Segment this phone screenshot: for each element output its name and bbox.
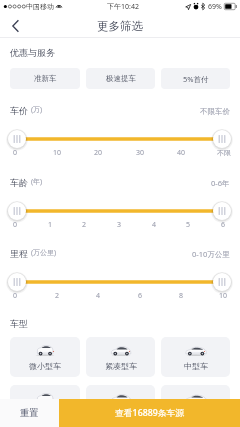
staticText: 重置 [20,407,39,419]
button[interactable]: 准新车 [10,68,80,89]
button[interactable]: 微小型车 [10,337,80,377]
button[interactable]: 极速提车 [86,68,155,89]
staticText: 0 [13,291,18,301]
staticText: 车龄 [10,177,28,188]
staticText: 30 [136,148,145,158]
staticText: (年) [31,177,43,187]
button[interactable]: 查看16889条车源 [59,399,240,427]
staticText: 6 [138,291,143,301]
staticText: 中型车 [184,361,208,371]
button[interactable]: 重置 [0,399,59,427]
staticText: 中大型车 [29,409,61,419]
button[interactable]: 返回 [0,13,30,38]
staticText: 4 [96,291,101,301]
button[interactable]: MPV [161,385,230,425]
staticText: 20 [94,148,103,158]
staticText: 0-6年 [211,178,230,188]
button[interactable]: 中型车 [161,337,230,377]
button[interactable]: SUV [86,385,155,425]
staticText: 5 [186,220,191,230]
staticText: 6 [221,220,226,230]
staticText: 极速提车 [106,74,136,83]
staticText: 不限车价 [200,107,230,116]
staticText: 紧凑型车 [105,361,137,371]
staticText: 0 [13,220,18,230]
staticText: 微小型车 [29,361,61,371]
staticText: 1 [48,220,53,230]
staticText: (万公里) [31,248,57,258]
staticText: 0 [13,148,18,158]
staticText: 下午10:42 [107,2,139,12]
staticText: 中国移动 [26,2,54,11]
staticText: 10 [53,148,62,158]
staticText: 4 [152,220,157,230]
button[interactable]: 紧凑型车 [86,337,155,377]
staticText: 不限 [217,148,231,157]
staticText: 优惠与服务 [10,47,55,58]
staticText: 0-10万公里 [192,249,230,259]
staticText: 里程 [10,248,28,259]
staticText: 2 [82,220,87,230]
staticText: 更多筛选 [97,19,143,33]
staticText: 车价 [10,105,28,116]
staticText: (万) [31,105,43,115]
staticText: SUV [113,409,129,420]
staticText: 5%首付 [183,74,209,84]
staticText: 8 [179,291,184,301]
staticText: 10 [219,291,228,301]
button[interactable]: 中大型车 [10,385,80,425]
staticText: 2 [55,291,60,301]
staticText: 查看16889条车源 [115,407,185,419]
staticText: 40 [177,148,186,158]
button[interactable]: 5%首付 [161,68,230,89]
staticText: 车型 [10,318,28,329]
staticText: 69% [208,2,222,12]
staticText: 3 [117,220,122,230]
staticText: 准新车 [34,74,57,83]
